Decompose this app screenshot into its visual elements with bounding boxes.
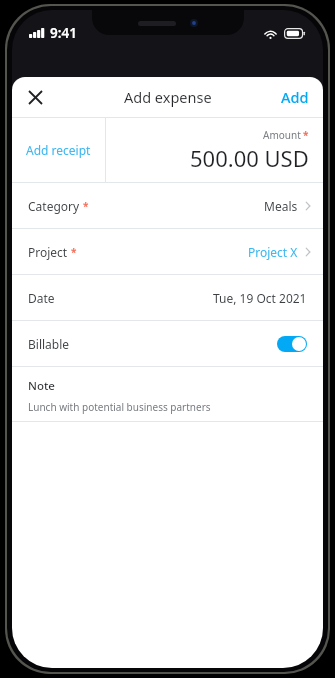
button[interactable]: Date xyxy=(12,275,323,320)
staticText: Project X xyxy=(248,244,298,260)
staticText: Note xyxy=(28,378,55,394)
button[interactable]: Note xyxy=(12,367,323,421)
staticText: Date xyxy=(28,290,55,306)
staticText: * xyxy=(83,199,89,213)
button[interactable]: Amount xyxy=(106,118,323,182)
button[interactable]: Category xyxy=(12,183,323,228)
staticText: * xyxy=(71,245,77,259)
button[interactable]: Project xyxy=(12,229,323,274)
button[interactable]: Billable xyxy=(12,321,323,366)
staticText: Billable xyxy=(28,336,70,352)
staticText: Category xyxy=(28,198,80,214)
staticText: Project xyxy=(28,244,68,260)
button[interactable]: Add receipt xyxy=(12,118,105,182)
staticText: * xyxy=(303,128,309,142)
staticText: Amount xyxy=(263,128,301,142)
staticText: 9:41 xyxy=(50,24,77,42)
staticText: Add xyxy=(281,87,309,107)
staticText: 500.00 USD xyxy=(190,143,309,173)
staticText: Tue, 19 Oct 2021 xyxy=(213,290,307,306)
staticText: Lunch with potential business partners xyxy=(28,400,211,414)
button[interactable]: Close xyxy=(18,80,52,114)
staticText: Meals xyxy=(264,198,298,214)
button[interactable]: Add xyxy=(267,78,323,116)
staticText: Add expense xyxy=(124,87,212,107)
staticText: Add receipt xyxy=(26,142,91,158)
